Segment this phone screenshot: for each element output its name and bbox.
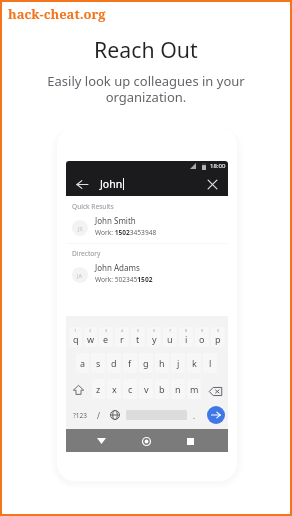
- button[interactable]: 4: [115, 327, 129, 347]
- other: Shift: [73, 385, 84, 395]
- button[interactable]: Recent apps: [181, 432, 199, 450]
- staticText: u: [167, 333, 173, 345]
- button[interactable]: h: [155, 353, 169, 373]
- staticText: 18:00: [210, 162, 226, 170]
- staticText: r: [120, 333, 124, 345]
- button[interactable]: k: [187, 353, 201, 373]
- staticText: 5: [137, 328, 140, 333]
- staticText: k: [192, 357, 197, 369]
- staticText: 6: [153, 328, 156, 333]
- staticText: JA: [77, 272, 83, 279]
- button[interactable]: Backspace: [203, 378, 225, 400]
- staticText: hack-cheat.org: [8, 5, 106, 23]
- staticText: j: [177, 357, 180, 369]
- button[interactable]: x: [107, 379, 121, 399]
- button[interactable]: 9: [195, 327, 209, 347]
- button[interactable]: Back: [73, 175, 91, 193]
- staticText: d: [111, 357, 117, 369]
- button[interactable]: c: [123, 379, 137, 399]
- other: Backspace: [209, 387, 222, 396]
- button[interactable]: d: [107, 353, 121, 373]
- staticText: m: [190, 383, 199, 395]
- staticText: p: [215, 333, 221, 345]
- button[interactable]: j: [171, 353, 185, 373]
- staticText: John: [100, 177, 123, 191]
- button[interactable]: 3: [99, 327, 113, 347]
- button[interactable]: /: [93, 404, 104, 426]
- button[interactable]: 2: [84, 327, 97, 347]
- staticText: h: [159, 357, 165, 369]
- staticText: /: [97, 410, 100, 421]
- button[interactable]: ?123: [69, 404, 91, 426]
- button[interactable]: m: [187, 379, 201, 399]
- staticText: 3: [105, 328, 108, 333]
- staticText: Quick Results: [72, 202, 114, 211]
- button[interactable]: z: [92, 379, 105, 399]
- staticText: z: [96, 383, 101, 395]
- staticText: Work: 5023451502: [95, 275, 153, 284]
- button[interactable]: Change language: [106, 404, 124, 426]
- button[interactable]: Search: [207, 406, 225, 424]
- staticText: Easily look up colleagues in your organi…: [47, 72, 245, 105]
- staticText: n: [175, 383, 181, 395]
- staticText: 8: [185, 328, 188, 333]
- staticText: e: [103, 333, 109, 345]
- staticText: 1: [74, 328, 77, 333]
- staticText: o: [199, 333, 205, 345]
- staticText: 2: [89, 328, 92, 333]
- button[interactable]: JA: [57, 260, 237, 285]
- button[interactable]: Home: [137, 432, 155, 450]
- staticText: 0: [217, 328, 220, 333]
- staticText: b: [159, 383, 165, 395]
- staticText: JS: [78, 225, 83, 232]
- button[interactable]: .: [188, 404, 200, 426]
- staticText: 7: [169, 328, 172, 333]
- button[interactable]: l: [203, 353, 217, 373]
- staticText: 9: [201, 328, 204, 333]
- staticText: Directory: [72, 249, 101, 258]
- button[interactable]: s: [91, 353, 105, 373]
- button[interactable]: 8: [179, 327, 193, 347]
- button[interactable]: 0: [211, 327, 225, 347]
- staticText: v: [144, 383, 149, 395]
- button[interactable]: Shift: [69, 378, 90, 400]
- staticText: x: [112, 383, 117, 395]
- staticText: Reach Out: [94, 35, 198, 64]
- staticText: t: [136, 333, 140, 345]
- staticText: i: [185, 333, 188, 345]
- staticText: John Smith: [95, 215, 136, 226]
- button[interactable]: 5: [131, 327, 145, 347]
- button[interactable]: v: [139, 379, 153, 399]
- button[interactable]: b: [155, 379, 169, 399]
- staticText: 4: [121, 328, 124, 333]
- staticText: .: [193, 410, 196, 421]
- button[interactable]: n: [171, 379, 185, 399]
- staticText: s: [96, 357, 101, 369]
- button[interactable]: 7: [163, 327, 177, 347]
- button[interactable]: g: [139, 353, 153, 373]
- button[interactable]: Back: [92, 432, 110, 450]
- button[interactable]: Clear search: [203, 175, 221, 193]
- button[interactable]: a: [76, 353, 89, 373]
- staticText: John Adams: [95, 262, 140, 273]
- staticText: q: [73, 333, 79, 345]
- staticText: w: [87, 333, 95, 345]
- staticText: g: [143, 357, 149, 369]
- staticText: l: [209, 357, 212, 369]
- staticText: a: [80, 357, 86, 369]
- staticText: y: [152, 333, 157, 345]
- staticText: Work: 15023453948: [95, 228, 157, 237]
- staticText: f: [128, 357, 132, 369]
- button[interactable]: 1: [69, 327, 82, 347]
- button[interactable]: JS: [57, 213, 237, 238]
- staticText: ?123: [73, 411, 87, 420]
- button[interactable]: 6: [147, 327, 161, 347]
- staticText: c: [128, 383, 133, 395]
- button[interactable]: f: [123, 353, 137, 373]
